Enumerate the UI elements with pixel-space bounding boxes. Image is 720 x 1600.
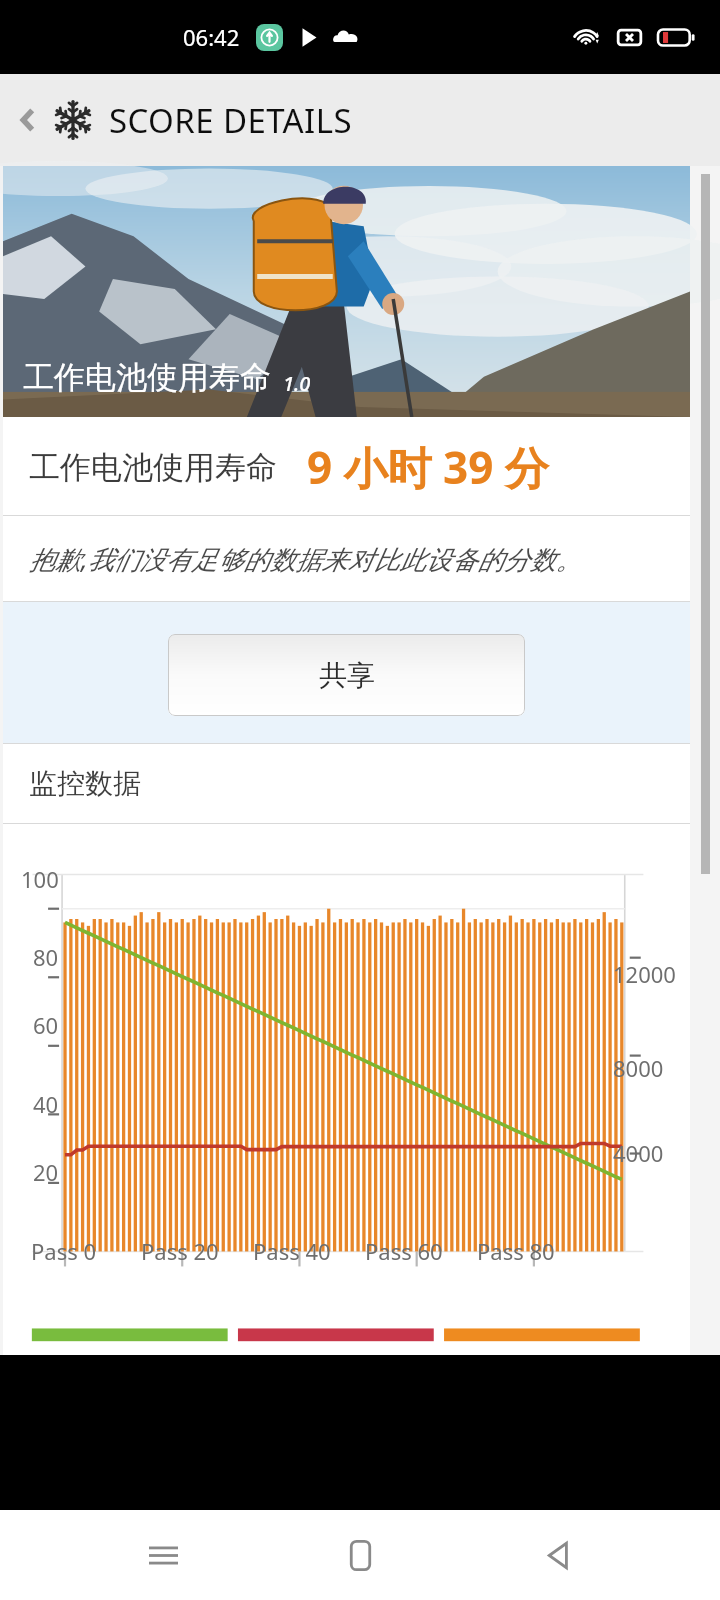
button[interactable]: Back [523,1520,593,1590]
staticText: 8000 [613,1053,664,1083]
staticText: 4000 [613,1138,664,1168]
button[interactable]: Home [325,1520,395,1590]
staticText: Pass 0 [31,1236,97,1266]
staticText: Pass 60 [365,1236,443,1266]
staticText: 工作电池使用寿命 [29,448,277,487]
staticText: Pass 80 [477,1236,555,1266]
staticText: 抱歉,我们没有足够的数据来对比此设备的分数。 [29,541,582,577]
button[interactable]: Back [6,98,50,142]
staticText: 9 小时 39 分 [307,437,549,497]
staticText: Pass 40 [253,1236,331,1266]
staticText: 40 [33,1089,59,1119]
staticText: 60 [33,1010,59,1040]
staticText: 20 [33,1157,59,1187]
staticText: 80 [33,942,59,972]
staticText: Pass 20 [141,1236,219,1266]
staticText: SCORE DETAILS [109,98,352,143]
staticText: 1.0 [283,370,311,397]
staticText: 工作电池使用寿命 [23,358,271,397]
staticText: 共享 [319,658,375,693]
staticText: 监控数据 [29,766,141,801]
staticText: 12000 [613,959,676,989]
staticText: 06:42 [183,22,240,52]
staticText: 100 [21,864,59,894]
button[interactable]: 共享 [168,634,525,716]
button[interactable]: Recent apps [128,1520,198,1590]
